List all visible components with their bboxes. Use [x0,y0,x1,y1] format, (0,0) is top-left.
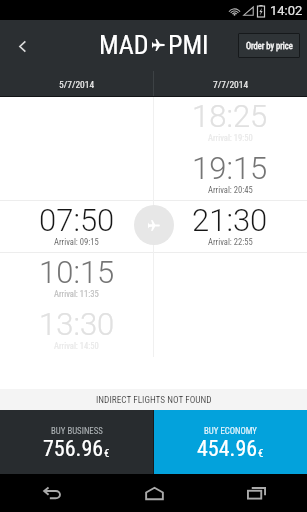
staticText: 19:15 [192,150,268,186]
staticText: Arrival: 09:15 [54,237,99,247]
staticText: 13:30 [39,306,115,342]
staticText: 454.96 [197,436,258,462]
staticText: 18:25 [192,98,268,134]
staticText: 10:15 [39,254,115,290]
button[interactable]: 13:30 [0,304,153,356]
button[interactable]: 19:15 [153,148,307,200]
staticText: INDIRECT FLIGHTS NOT FOUND [96,394,212,405]
staticText: 07:50 [39,202,115,238]
button[interactable]: Order by price [238,33,300,58]
button[interactable]: 5/7/2014 [0,71,153,97]
staticText: € [104,447,110,460]
button[interactable]: BUY ECONOMY [154,410,307,474]
staticText: Arrival: 20:45 [208,185,253,195]
staticText: Arrival: 22:55 [208,237,253,247]
button[interactable]: BUY BUSINESS [0,410,153,474]
staticText: Arrival: 14:50 [54,341,99,351]
button[interactable]: 10:15 [0,252,153,304]
staticText: BUY BUSINESS [51,426,103,436]
staticText: 14:02 [270,3,303,18]
button[interactable]: 7/7/2014 [154,71,307,97]
staticText: MAD [99,30,149,60]
button[interactable]: Back [0,24,44,68]
button[interactable]: Swap direction [134,205,174,245]
staticText: BUY ECONOMY [204,426,257,436]
staticText: 7/7/2014 [213,79,249,90]
button[interactable]: 18:25 [153,96,307,148]
staticText: Arrival: 11:35 [54,289,99,299]
staticText: PMI [168,30,209,60]
staticText: € [258,447,264,460]
staticText: 21:30 [192,202,268,238]
button[interactable]: 21:30 [153,200,307,252]
button[interactable]: Recent apps [205,474,307,512]
button[interactable]: Home [103,474,205,512]
button[interactable]: 07:50 [0,200,153,252]
staticText: Order by price [246,41,293,51]
staticText: Arrival: 19:50 [208,133,253,143]
staticText: 756.96 [43,436,104,462]
staticText: 5/7/2014 [59,79,95,90]
button[interactable]: Back [0,474,103,512]
